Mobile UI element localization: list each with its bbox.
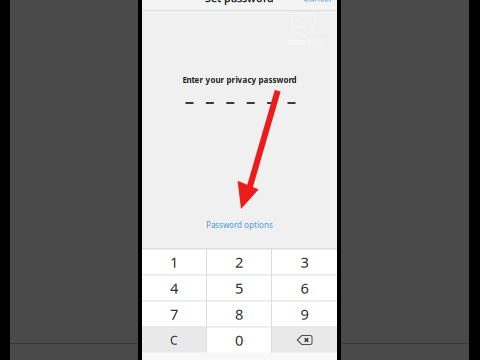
button[interactable]: Delete xyxy=(272,327,337,352)
staticText: 6 xyxy=(300,278,308,298)
button[interactable]: 3 xyxy=(272,249,337,274)
button[interactable]: 4 xyxy=(142,275,206,300)
staticText: 8 xyxy=(235,304,243,324)
staticText: Cancel xyxy=(303,0,331,4)
staticText: 4 xyxy=(170,278,178,298)
button[interactable]: 7 xyxy=(142,301,206,326)
staticText: 2 xyxy=(235,252,243,272)
button[interactable]: 9 xyxy=(272,301,337,326)
staticText: 1 xyxy=(170,252,178,272)
staticText: 0 xyxy=(235,330,243,350)
button[interactable]: 5 xyxy=(207,275,271,300)
button[interactable]: 6 xyxy=(272,275,337,300)
button[interactable]: 2 xyxy=(207,249,271,274)
staticText: 9 xyxy=(300,304,308,324)
staticText: C xyxy=(170,332,178,348)
button[interactable]: Password options xyxy=(142,220,337,230)
button[interactable]: 0 xyxy=(207,327,271,352)
staticText: Password options xyxy=(206,220,273,230)
staticText: 5 xyxy=(235,278,243,298)
staticText: Set password xyxy=(205,0,274,5)
button[interactable]: 1 xyxy=(142,249,206,274)
staticText: 7 xyxy=(170,304,178,324)
staticText: 3 xyxy=(300,252,308,272)
staticText: Enter your privacy password xyxy=(182,75,296,85)
button[interactable]: 8 xyxy=(207,301,271,326)
button[interactable]: C xyxy=(142,327,206,352)
button[interactable]: Cancel xyxy=(297,0,337,3)
